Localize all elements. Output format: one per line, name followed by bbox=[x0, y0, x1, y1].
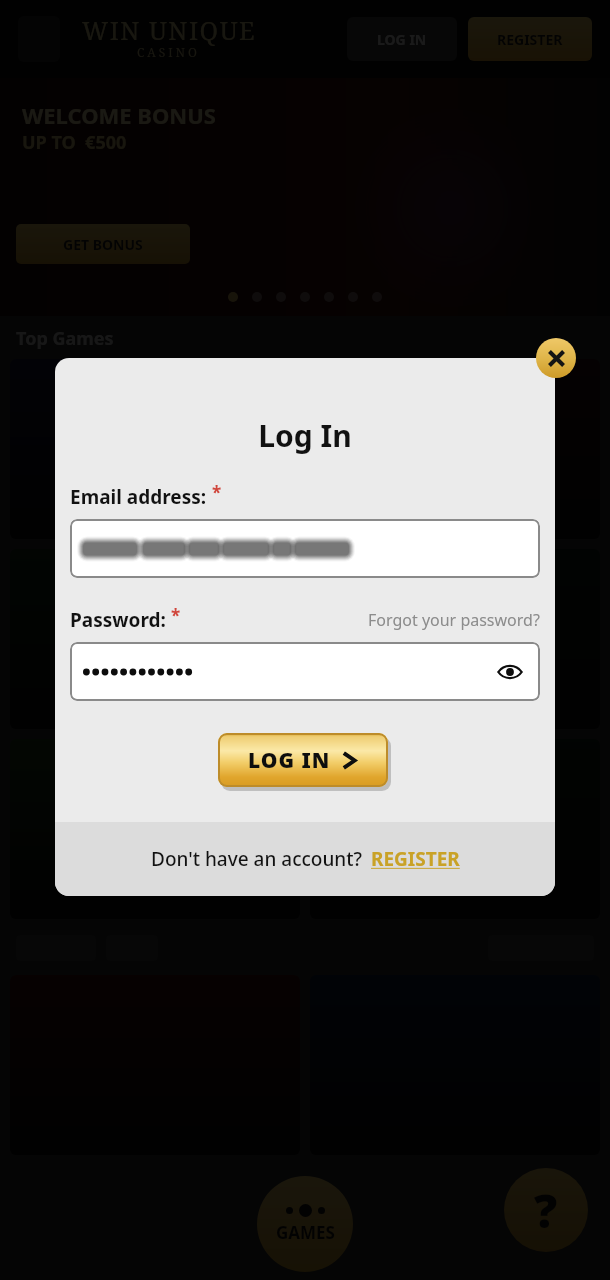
staticText: REGISTER bbox=[371, 846, 460, 872]
button[interactable]: REGISTER bbox=[371, 846, 460, 872]
button[interactable]: GET BONUS bbox=[16, 224, 190, 264]
staticText: LOG IN bbox=[377, 30, 427, 49]
button[interactable]: Forgot your password? bbox=[368, 609, 540, 631]
button[interactable] bbox=[10, 359, 300, 539]
button[interactable]: GAMES bbox=[257, 1176, 353, 1272]
button[interactable] bbox=[70, 519, 540, 578]
button[interactable] bbox=[10, 549, 300, 729]
button[interactable]: Show password bbox=[70, 642, 540, 701]
staticText: GET BONUS bbox=[63, 235, 143, 254]
button[interactable]: REGISTER bbox=[468, 17, 592, 61]
staticText: REGISTER bbox=[497, 30, 563, 49]
button[interactable]: LOG IN bbox=[347, 17, 457, 61]
button[interactable]: Show password bbox=[493, 655, 527, 689]
button[interactable]: Close bbox=[536, 338, 576, 378]
staticText: Forgot your password? bbox=[368, 609, 540, 631]
staticText: Don't have an account? bbox=[151, 846, 363, 872]
staticText: CASINO bbox=[137, 44, 200, 60]
staticText: * bbox=[212, 481, 222, 504]
staticText: WIN UNIQUE bbox=[82, 13, 257, 47]
staticText: Email address: bbox=[70, 484, 207, 510]
button[interactable] bbox=[310, 549, 600, 729]
staticText: WELCOME BONUS bbox=[22, 100, 216, 130]
staticText: LOG IN bbox=[248, 746, 331, 775]
button[interactable]: Help bbox=[504, 1168, 588, 1252]
staticText: * bbox=[171, 604, 181, 627]
staticText: Password: bbox=[70, 607, 166, 633]
staticText: ? bbox=[534, 1179, 558, 1242]
staticText: GAMES bbox=[276, 1221, 335, 1244]
button[interactable] bbox=[310, 359, 600, 539]
button[interactable]: LOG IN bbox=[218, 733, 388, 787]
staticText: Top Games bbox=[16, 326, 114, 351]
staticText: Log In bbox=[70, 415, 540, 456]
staticText: UP TO €500 bbox=[22, 130, 127, 155]
button[interactable] bbox=[310, 739, 600, 919]
button[interactable] bbox=[10, 739, 300, 919]
